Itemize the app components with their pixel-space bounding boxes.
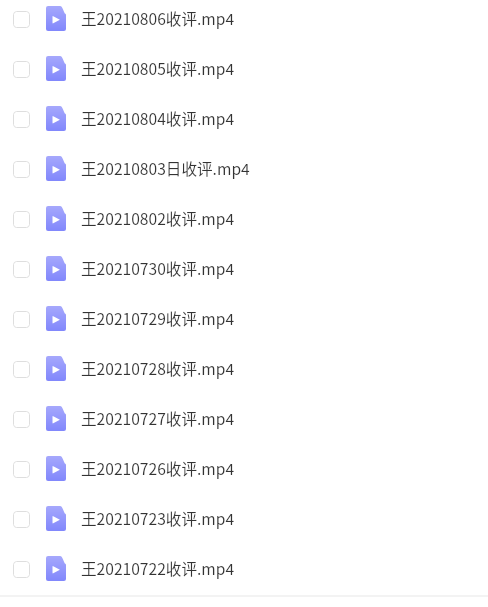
staticText: 王20210722收评.mp4 (81, 557, 235, 580)
button[interactable]: Select 王20210803日收评.mp4 (0, 143, 488, 193)
button[interactable]: Select 王20210722收评.mp4 (13, 561, 30, 578)
button[interactable]: Select 王20210803日收评.mp4 (13, 161, 30, 178)
staticText: 王20210803日收评.mp4 (81, 157, 250, 180)
button[interactable]: Select 王20210802收评.mp4 (13, 211, 30, 228)
button[interactable]: Select 王20210727收评.mp4 (13, 411, 30, 428)
staticText: 王20210729收评.mp4 (81, 307, 235, 330)
button[interactable]: Select 王20210728收评.mp4 (13, 361, 30, 378)
staticText: 王20210727收评.mp4 (81, 407, 235, 430)
button[interactable]: Select 王20210726收评.mp4 (0, 443, 488, 493)
button[interactable]: Select 王20210805收评.mp4 (13, 61, 30, 78)
button[interactable]: Select 王20210804收评.mp4 (0, 93, 488, 143)
button[interactable]: Select 王20210723收评.mp4 (0, 493, 488, 543)
staticText: 王20210804收评.mp4 (81, 107, 235, 130)
staticText: 王20210728收评.mp4 (81, 357, 235, 380)
button[interactable]: Select 王20210728收评.mp4 (0, 343, 488, 393)
button[interactable]: Select 王20210727收评.mp4 (0, 393, 488, 443)
button[interactable]: Select 王20210802收评.mp4 (0, 193, 488, 243)
button[interactable]: Select 王20210723收评.mp4 (13, 511, 30, 528)
staticText: 王20210802收评.mp4 (81, 207, 235, 230)
button[interactable]: Select 王20210806收评.mp4 (13, 11, 30, 28)
button[interactable]: Select 王20210805收评.mp4 (0, 43, 488, 93)
button[interactable]: Select 王20210730收评.mp4 (13, 261, 30, 278)
staticText: 王20210805收评.mp4 (81, 57, 235, 80)
button[interactable]: Select 王20210726收评.mp4 (13, 461, 30, 478)
staticText: 王20210726收评.mp4 (81, 457, 235, 480)
button[interactable]: Select 王20210722收评.mp4 (0, 543, 488, 593)
button[interactable]: Select 王20210729收评.mp4 (13, 311, 30, 328)
staticText: 王20210806收评.mp4 (81, 7, 235, 30)
button[interactable]: Select 王20210806收评.mp4 (0, 0, 488, 43)
button[interactable]: Select 王20210730收评.mp4 (0, 243, 488, 293)
button[interactable]: Select 王20210729收评.mp4 (0, 293, 488, 343)
staticText: 王20210723收评.mp4 (81, 507, 235, 530)
staticText: 王20210730收评.mp4 (81, 257, 235, 280)
button[interactable]: Select 王20210804收评.mp4 (13, 111, 30, 128)
